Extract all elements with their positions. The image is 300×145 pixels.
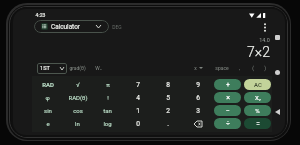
staticText: Xᵧ — [255, 94, 261, 102]
staticText: sin — [44, 107, 52, 114]
staticText: = — [256, 120, 260, 128]
button[interactable]: 9 — [184, 79, 211, 90]
button[interactable]: 6 — [184, 92, 211, 103]
button[interactable]: × — [214, 92, 241, 103]
staticText: 0 — [136, 120, 140, 128]
staticText: ! — [107, 94, 109, 101]
staticText: − — [225, 107, 230, 115]
staticText: e — [46, 120, 50, 127]
button[interactable]: 1ST — [37, 63, 67, 74]
button[interactable]: ÷ — [214, 118, 241, 129]
staticText: . — [167, 120, 169, 128]
button[interactable]: 0 — [124, 118, 151, 129]
staticText: DEG — [112, 24, 122, 30]
staticText: Wₙ — [95, 65, 102, 72]
staticText: + — [226, 81, 230, 89]
button[interactable]: + — [214, 79, 241, 90]
staticText: RAD — [42, 81, 54, 88]
button[interactable]: Home — [271, 66, 283, 78]
button[interactable]: ln — [64, 118, 91, 129]
button[interactable]: 5 — [154, 92, 181, 103]
button[interactable]: AC — [244, 79, 271, 90]
staticText: % — [255, 107, 260, 114]
button[interactable]: − — [214, 105, 241, 116]
staticText: 4:23 — [35, 12, 46, 18]
staticText: × — [226, 94, 230, 102]
staticText: 4 — [136, 94, 140, 102]
button[interactable]: e — [34, 118, 61, 129]
staticText: 1ST — [40, 65, 50, 72]
button[interactable]: Back — [271, 106, 283, 118]
staticText: 7 — [136, 81, 140, 89]
button[interactable] — [184, 118, 211, 129]
button[interactable]: 4 — [124, 92, 151, 103]
staticText: 9 — [196, 81, 200, 89]
button[interactable]: √ — [64, 79, 91, 90]
staticText: log — [103, 120, 112, 127]
staticText: ) — [264, 65, 266, 71]
button[interactable]: = — [244, 118, 271, 129]
staticText: space — [215, 65, 229, 71]
staticText: x — [194, 65, 197, 71]
staticText: , — [239, 65, 240, 71]
staticText: 8 — [166, 81, 170, 89]
button[interactable]: . — [154, 118, 181, 129]
staticText: ( — [252, 65, 254, 71]
staticText: 3 — [196, 107, 200, 115]
button[interactable]: RAD(θ) — [64, 92, 91, 103]
button[interactable]: tan — [94, 105, 121, 116]
button[interactable]: sin — [34, 105, 61, 116]
staticText: RAD(θ) — [68, 94, 88, 101]
staticText: cos — [73, 107, 83, 114]
button[interactable]: RAD — [34, 79, 61, 90]
button[interactable]: More options — [258, 20, 272, 34]
button[interactable]: 2 — [154, 105, 181, 116]
staticText: AC — [254, 81, 262, 88]
button[interactable]: cos — [64, 105, 91, 116]
staticText: π — [106, 81, 110, 88]
button[interactable]: π — [94, 79, 121, 90]
staticText: grad(θ) — [69, 65, 86, 71]
staticText: tan — [103, 107, 112, 114]
button[interactable]: φ — [34, 92, 61, 103]
staticText: 7×2 — [247, 44, 270, 60]
staticText: 1 — [136, 107, 140, 115]
button[interactable]: ! — [94, 92, 121, 103]
button[interactable]: 3 — [184, 105, 211, 116]
button[interactable]: Calculator — [34, 20, 109, 33]
button[interactable]: 7 — [124, 79, 151, 90]
staticText: 14.0 — [259, 37, 270, 43]
button[interactable]: % — [244, 105, 271, 116]
button[interactable]: Xᵧ — [244, 92, 271, 103]
button[interactable]: Recent apps — [271, 31, 283, 43]
staticText: 5 — [166, 94, 170, 102]
button[interactable]: 1 — [124, 105, 151, 116]
button[interactable]: 8 — [154, 79, 181, 90]
button[interactable]: log — [94, 118, 121, 129]
staticText: ÷ — [226, 120, 230, 128]
staticText: Calculator — [51, 23, 80, 31]
staticText: √ — [76, 81, 80, 88]
staticText: φ — [45, 94, 50, 101]
staticText: ln — [75, 120, 80, 127]
staticText: 6 — [196, 94, 200, 102]
staticText: 2 — [166, 107, 170, 115]
